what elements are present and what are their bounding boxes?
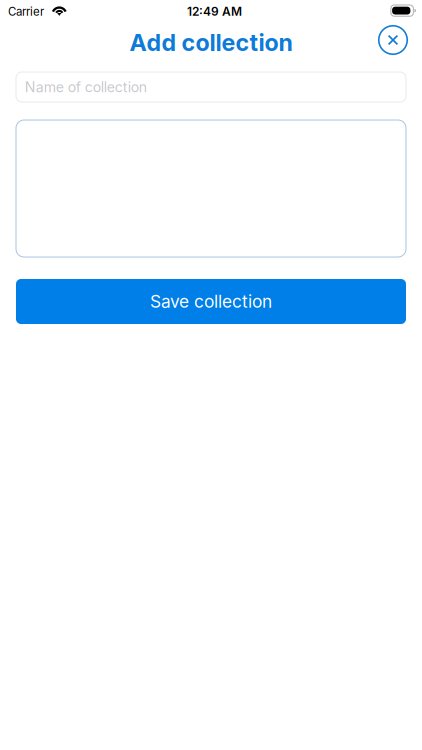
staticText: Name of collection bbox=[25, 78, 147, 95]
staticText: Save collection bbox=[150, 291, 272, 312]
button[interactable]: Name of collection bbox=[16, 72, 406, 102]
staticText: Carrier bbox=[8, 5, 44, 18]
button[interactable]: Description bbox=[16, 120, 406, 257]
staticText: Add collection bbox=[129, 28, 292, 57]
button[interactable]: Save collection bbox=[16, 279, 406, 324]
button[interactable]: Close bbox=[376, 23, 410, 57]
staticText: 12:49 AM bbox=[187, 4, 242, 19]
